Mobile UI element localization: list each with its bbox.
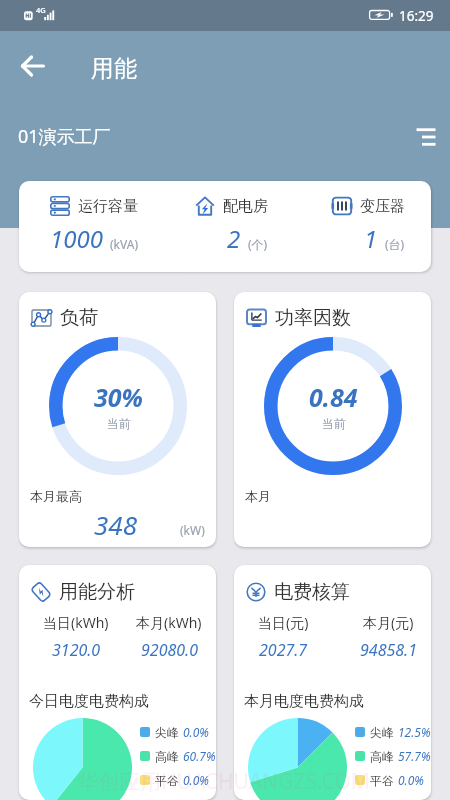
button[interactable]: 用能分析 <box>19 565 216 800</box>
staticText: 2 <box>227 222 241 255</box>
staticText: (kVA) <box>110 236 138 252</box>
staticText: 3120.0 <box>52 639 101 661</box>
staticText: 本月 <box>245 488 271 504</box>
staticText: (个) <box>248 236 268 252</box>
staticText: 2027.7 <box>259 639 308 661</box>
staticText: 0.84 <box>309 380 358 414</box>
button[interactable]: 变压器 <box>294 181 431 255</box>
staticText: 今日电度电费构成 <box>29 692 149 711</box>
staticText: 平谷 <box>155 773 179 788</box>
button[interactable]: Back <box>13 46 53 86</box>
staticText: 本月(kWh) <box>136 613 202 632</box>
button[interactable]: 运行容量 <box>19 181 157 255</box>
staticText: 当日(元) <box>258 613 309 632</box>
staticText: (kW) <box>180 522 205 538</box>
button[interactable]: 功率因数 <box>234 292 431 547</box>
staticText: 0.0% <box>398 772 424 788</box>
button[interactable]: 负荷 <box>19 292 216 547</box>
staticText: 运行容量 <box>78 197 138 216</box>
staticText: 负荷 <box>60 306 98 330</box>
staticText: 用能 <box>91 54 137 83</box>
staticText: 当前 <box>322 416 346 431</box>
staticText: 94858.1 <box>360 639 417 661</box>
staticText: 功率因数 <box>275 306 351 330</box>
staticText: 12.5% <box>398 724 431 740</box>
staticText: 0.0% <box>183 772 209 788</box>
staticText: 16:29 <box>399 7 434 25</box>
staticText: 本月(元) <box>363 613 414 632</box>
staticText: 电费核算 <box>274 580 350 604</box>
staticText: 高峰 <box>370 749 394 764</box>
staticText: 尖峰 <box>370 725 394 740</box>
staticText: 4G <box>36 5 46 15</box>
staticText: 华创应用HUACHUANGZS.COM <box>77 767 370 796</box>
staticText: 变压器 <box>360 197 405 216</box>
staticText: 57.7% <box>398 748 431 764</box>
staticText: 60.7% <box>183 748 216 764</box>
staticText: (台) <box>385 236 405 252</box>
button[interactable]: 电费核算 <box>234 565 431 800</box>
staticText: 平谷 <box>370 773 394 788</box>
staticText: 用能分析 <box>59 580 135 604</box>
staticText: 0.0% <box>183 724 209 740</box>
staticText: 本月最高 <box>30 488 82 504</box>
staticText: 1000 <box>50 222 103 255</box>
staticText: 348 <box>94 507 137 542</box>
staticText: 01演示工厂 <box>18 124 111 149</box>
staticText: 尖峰 <box>155 725 179 740</box>
staticText: 30% <box>94 380 143 414</box>
staticText: 当前 <box>107 416 131 431</box>
staticText: 本月电度电费构成 <box>244 692 364 711</box>
staticText: 1 <box>364 222 378 255</box>
button[interactable]: Menu <box>404 121 436 153</box>
staticText: 配电房 <box>223 197 268 216</box>
button[interactable]: 配电房 <box>157 181 294 255</box>
staticText: 92080.0 <box>141 639 198 661</box>
staticText: 高峰 <box>155 749 179 764</box>
staticText: 当日(kWh) <box>43 613 109 632</box>
